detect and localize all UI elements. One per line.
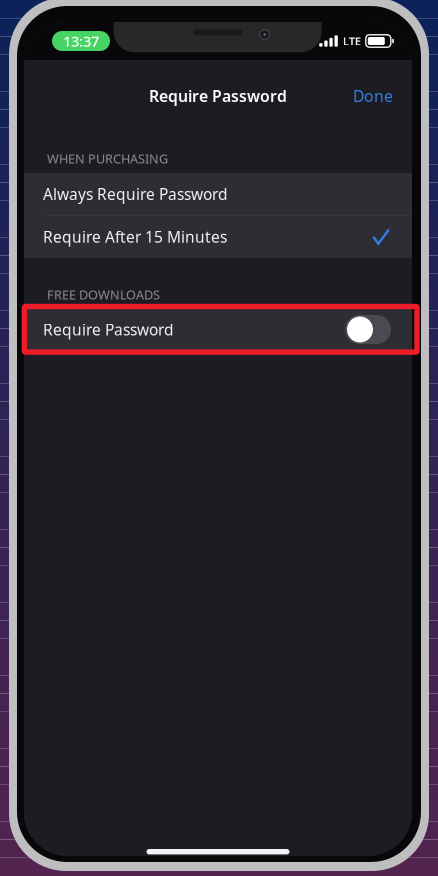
staticText: FREE DOWNLOADS bbox=[47, 286, 160, 303]
staticText: WHEN PURCHASING bbox=[47, 150, 168, 167]
button[interactable]: Done bbox=[334, 73, 412, 119]
button[interactable]: Always Require Password bbox=[24, 173, 412, 215]
staticText: Always Require Password bbox=[43, 183, 228, 205]
staticText: LTE bbox=[343, 33, 361, 49]
button[interactable]: Require Password bbox=[24, 307, 412, 352]
staticText: Require Password bbox=[149, 85, 287, 107]
staticText: 13:37 bbox=[63, 31, 99, 51]
staticText: Done bbox=[353, 85, 393, 107]
staticText: Require After 15 Minutes bbox=[43, 226, 227, 247]
staticText: Require Password bbox=[43, 319, 174, 340]
button[interactable]: Require After 15 Minutes bbox=[24, 216, 412, 258]
